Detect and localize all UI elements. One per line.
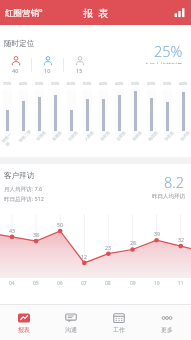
staticText: 8.2 [164, 172, 185, 192]
staticText: 30% [163, 81, 172, 87]
staticText: 20% [147, 81, 156, 87]
staticText: 物流部 [147, 130, 159, 142]
button[interactable]: Charts [173, 6, 186, 19]
staticText: 40% [99, 81, 108, 87]
staticText: 销售二部 [18, 128, 32, 143]
staticText: 人事部 [83, 130, 95, 142]
staticText: 25% [154, 41, 183, 61]
staticText: 技术部 [179, 130, 191, 142]
staticText: 06 [57, 280, 63, 287]
staticText: 30% [35, 81, 44, 87]
staticText: 50 [57, 221, 63, 228]
staticText: 运营部 [115, 130, 127, 142]
staticText: 昨日人均拜访 [152, 193, 185, 200]
staticText: 月人均拜访: 7.6 [4, 185, 43, 193]
staticText: 08 [105, 280, 111, 287]
staticText: 43 [9, 227, 15, 234]
staticText: 客服部 [51, 130, 63, 142]
staticText: 50% [83, 81, 92, 87]
staticText: 40% [19, 81, 28, 87]
staticText: 客户拜访 [4, 171, 35, 181]
staticText: 30% [51, 81, 60, 87]
button[interactable]: 沟通 [47, 305, 95, 340]
staticText: 40% [115, 81, 124, 87]
staticText: 今日人均签到量 [144, 62, 183, 64]
staticText: 工作 [113, 326, 125, 334]
button[interactable]: 报表 [0, 305, 47, 340]
staticText: 11 [178, 280, 184, 287]
staticText: 报表 [18, 326, 30, 334]
staticText: 更多 [161, 326, 173, 334]
staticText: 昨日总拜访: 512 [4, 195, 44, 203]
staticText: 28 [130, 239, 136, 246]
staticText: 04 [9, 280, 15, 287]
staticText: 15 [76, 67, 83, 74]
staticText: 红圈营销° [5, 7, 43, 19]
staticText: 行政部 [67, 130, 79, 142]
staticText: 23 [105, 244, 111, 251]
staticText: 市场部 [35, 130, 47, 142]
staticText: 40 [12, 67, 19, 74]
staticText: 沟通 [65, 326, 77, 334]
staticText: 报 表 [83, 6, 109, 20]
staticText: 10 [44, 67, 51, 74]
button[interactable]: 更多 [143, 305, 191, 340]
staticText: 研发部 [99, 130, 111, 142]
staticText: 30% [131, 81, 140, 87]
staticText: 05 [33, 280, 39, 287]
staticText: 07 [81, 280, 87, 287]
staticText: 32 [178, 236, 184, 243]
staticText: 09 [130, 280, 136, 287]
staticText: 60% [67, 81, 76, 87]
button[interactable]: 工作 [95, 305, 143, 340]
staticText: 采购部 [131, 130, 143, 142]
staticText: 40% [179, 81, 188, 87]
staticText: 39 [154, 230, 160, 237]
staticText: 销售一部 [1, 129, 18, 147]
staticText: 38 [33, 231, 39, 238]
staticText: 12 [81, 253, 87, 260]
staticText: 随时定位 [4, 39, 35, 49]
staticText: 70% [3, 81, 12, 87]
staticText: 10 [154, 280, 160, 287]
staticText: 法务部 [163, 130, 175, 142]
